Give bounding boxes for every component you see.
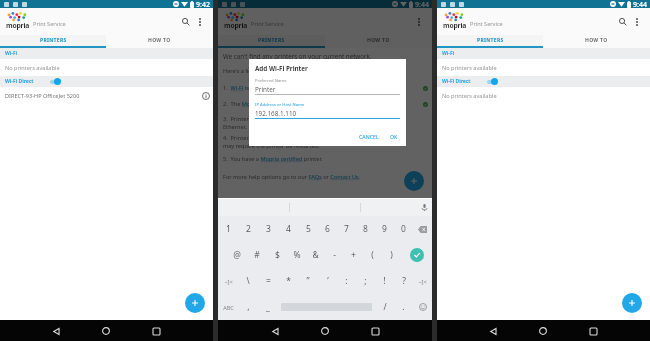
button[interactable]: ~[< bbox=[218, 268, 238, 294]
button[interactable]: Emoji bbox=[413, 294, 432, 320]
button[interactable]: Search bbox=[178, 14, 193, 29]
button[interactable]: Home bbox=[536, 324, 550, 338]
staticText: _ bbox=[266, 301, 270, 313]
button[interactable]: @ bbox=[227, 242, 247, 268]
button[interactable]: ; bbox=[356, 268, 375, 294]
staticText: HOW TO bbox=[367, 37, 390, 44]
button[interactable]: No printers available bbox=[437, 87, 650, 104]
button[interactable]: Recents bbox=[586, 324, 600, 338]
button[interactable]: No printers available bbox=[0, 59, 213, 76]
button[interactable]: Add printer bbox=[404, 171, 424, 191]
staticText: CANCEL bbox=[359, 133, 379, 140]
button[interactable]: = bbox=[258, 268, 278, 294]
button[interactable]: 4 bbox=[278, 216, 298, 242]
button[interactable]: Backspace bbox=[413, 216, 432, 242]
button[interactable]: 5 bbox=[298, 216, 318, 242]
button[interactable]: ABC bbox=[218, 294, 238, 320]
staticText: Add Wi-Fi Printer bbox=[255, 64, 308, 73]
button[interactable]: Home bbox=[318, 324, 332, 338]
staticText: Wi-Fi Direct bbox=[442, 78, 471, 85]
button[interactable]: , bbox=[238, 294, 258, 320]
staticText: 4. Printer is turned on and ready. Some … bbox=[223, 134, 370, 142]
button[interactable]: More options bbox=[193, 15, 207, 29]
staticText: 1 bbox=[226, 223, 231, 235]
staticText: ’ bbox=[327, 275, 329, 287]
button[interactable]: CANCEL bbox=[357, 131, 381, 142]
button[interactable]: Back bbox=[486, 324, 500, 338]
staticText: 0 bbox=[401, 223, 406, 235]
staticText: 9:44 bbox=[633, 0, 647, 8]
staticText: 192.168.1.110 bbox=[255, 109, 297, 118]
button[interactable]: 0 bbox=[394, 216, 413, 242]
button[interactable]: HOW TO bbox=[325, 35, 432, 46]
button[interactable]: Back bbox=[49, 324, 63, 338]
button[interactable]: DIRECT-93-HP OfficeJet 5200 bbox=[0, 87, 213, 104]
button[interactable]: / bbox=[375, 294, 394, 320]
button[interactable]: + bbox=[344, 242, 363, 268]
staticText: + bbox=[351, 249, 356, 261]
button[interactable]: Printer info bbox=[200, 90, 211, 101]
staticText: 8 bbox=[363, 223, 368, 235]
button[interactable]: 9 bbox=[375, 216, 394, 242]
button[interactable]: PRINTERS bbox=[0, 35, 106, 46]
button[interactable]: Home bbox=[99, 324, 113, 338]
button[interactable]: More options bbox=[412, 15, 426, 29]
button[interactable]: ! bbox=[375, 268, 394, 294]
staticText: - bbox=[333, 249, 336, 261]
button[interactable]: : bbox=[337, 268, 356, 294]
staticText: 9 bbox=[382, 223, 387, 235]
other: Voice input bbox=[422, 204, 427, 211]
staticText: 1. Wi-Fi is turned on. bbox=[223, 84, 279, 92]
button[interactable]: 1 bbox=[218, 216, 238, 242]
button[interactable]: HOW TO bbox=[106, 35, 213, 46]
button[interactable]: Recents bbox=[368, 324, 382, 338]
button[interactable]: \ bbox=[238, 268, 258, 294]
button[interactable]: ( bbox=[363, 242, 382, 268]
staticText: IP Address or Host Name bbox=[255, 102, 305, 108]
button[interactable]: Recents bbox=[149, 324, 163, 338]
button[interactable]: PRINTERS bbox=[218, 35, 325, 46]
button[interactable]: ) bbox=[382, 242, 401, 268]
staticText: * bbox=[286, 275, 291, 287]
staticText: : bbox=[345, 275, 348, 287]
button[interactable]: Toggle Wi-Fi Direct bbox=[50, 76, 62, 87]
staticText: No printers available bbox=[5, 64, 60, 72]
button[interactable]: PRINTERS bbox=[437, 35, 543, 46]
button[interactable]: 6 bbox=[318, 216, 337, 242]
staticText: Here's a list of things to check: bbox=[223, 67, 303, 75]
button[interactable]: ? bbox=[394, 268, 413, 294]
button[interactable]: % bbox=[287, 242, 306, 268]
button[interactable]: Add printer bbox=[622, 293, 642, 313]
button[interactable]: Enter bbox=[401, 242, 432, 268]
button[interactable]: ” bbox=[298, 268, 318, 294]
button[interactable]: OK bbox=[388, 131, 400, 142]
staticText: Print Service bbox=[470, 20, 503, 28]
button[interactable]: . bbox=[394, 294, 413, 320]
button[interactable]: 3 bbox=[258, 216, 278, 242]
button[interactable]: $ bbox=[267, 242, 287, 268]
button[interactable]: Search bbox=[615, 14, 630, 29]
button[interactable]: 8 bbox=[356, 216, 375, 242]
button[interactable]: Add printer bbox=[185, 293, 205, 313]
button[interactable]: No printers available bbox=[437, 59, 650, 76]
button[interactable]: 7 bbox=[337, 216, 356, 242]
button[interactable]: HOW TO bbox=[543, 35, 650, 46]
button[interactable]: - bbox=[325, 242, 344, 268]
staticText: 6 bbox=[325, 223, 330, 235]
staticText: ~[< bbox=[224, 278, 233, 285]
button[interactable]: Back bbox=[268, 324, 282, 338]
button[interactable]: & bbox=[306, 242, 325, 268]
staticText: HOW TO bbox=[148, 37, 171, 44]
staticText: PRINTERS bbox=[258, 37, 285, 44]
staticText: 3. Printer is on the same Wi-Fi network,… bbox=[223, 115, 373, 123]
button[interactable]: Toggle Wi-Fi Direct bbox=[487, 76, 499, 87]
button[interactable]: _ bbox=[258, 294, 278, 320]
button[interactable]: ~[< bbox=[413, 268, 432, 294]
button[interactable]: More options bbox=[630, 15, 644, 29]
button[interactable]: * bbox=[278, 268, 298, 294]
button[interactable]: # bbox=[247, 242, 267, 268]
staticText: DIRECT-93-HP OfficeJet 5200 bbox=[5, 92, 80, 100]
button[interactable]: 2 bbox=[238, 216, 258, 242]
button[interactable]: ’ bbox=[318, 268, 337, 294]
